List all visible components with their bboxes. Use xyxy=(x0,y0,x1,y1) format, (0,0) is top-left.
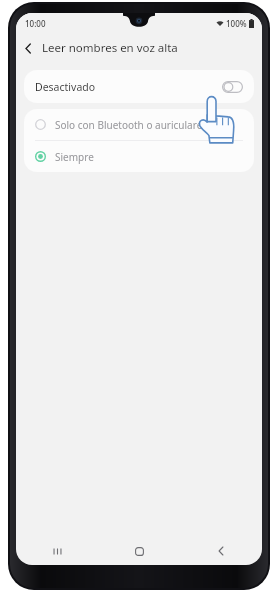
staticText: Siempre xyxy=(55,150,94,164)
staticText: 10:00 xyxy=(25,18,46,29)
button[interactable]: Desactivado xyxy=(24,70,254,103)
staticText: Solo con Bluetooth o auriculares xyxy=(55,118,208,132)
button[interactable]: Home xyxy=(98,537,180,565)
button[interactable]: Siempre xyxy=(24,141,254,172)
button[interactable]: Recent apps xyxy=(16,537,98,565)
staticText: Desactivado xyxy=(35,80,222,94)
staticText: Leer nombres en voz alta xyxy=(42,40,178,56)
staticText: 100% xyxy=(226,18,247,29)
button[interactable]: Back xyxy=(16,36,40,60)
button[interactable]: Back xyxy=(180,537,262,565)
button[interactable]: Solo con Bluetooth o auriculares xyxy=(24,109,254,140)
